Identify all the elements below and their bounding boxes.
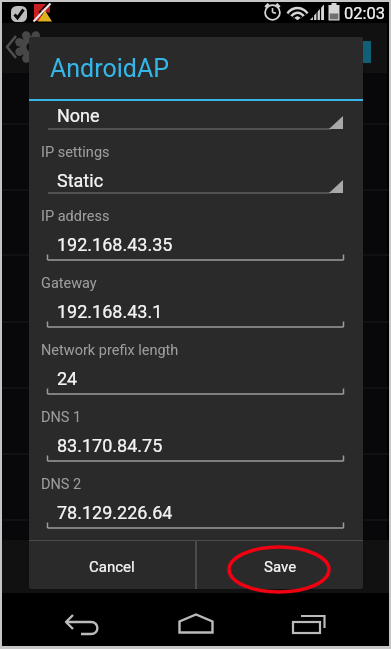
staticText: Save <box>264 558 297 576</box>
staticText: 02:03 <box>344 4 386 23</box>
button[interactable]: AndroidAP <box>50 54 169 83</box>
button[interactable]: Recent apps <box>286 612 330 638</box>
button[interactable]: 24 <box>57 368 78 389</box>
staticText: IP settings <box>41 144 110 161</box>
staticText: Gateway <box>41 275 97 292</box>
button[interactable]: Back <box>60 612 106 638</box>
staticText: DNS 1 <box>41 409 82 426</box>
staticText: Cancel <box>89 558 135 576</box>
button[interactable]: Cancel <box>29 543 195 589</box>
staticText: IP address <box>41 208 110 225</box>
button[interactable]: Save <box>197 543 363 589</box>
staticText: DNS 2 <box>41 476 82 493</box>
staticText: Network prefix length <box>41 342 179 359</box>
button[interactable]: Static <box>57 170 104 191</box>
button[interactable]: 83.170.84.75 <box>57 435 163 456</box>
button[interactable]: None <box>57 105 100 126</box>
button[interactable]: 192.168.43.35 <box>57 234 173 255</box>
button[interactable]: 78.129.226.64 <box>57 502 173 523</box>
button[interactable]: Home <box>174 612 218 638</box>
button[interactable]: 192.168.43.1 <box>57 301 163 322</box>
